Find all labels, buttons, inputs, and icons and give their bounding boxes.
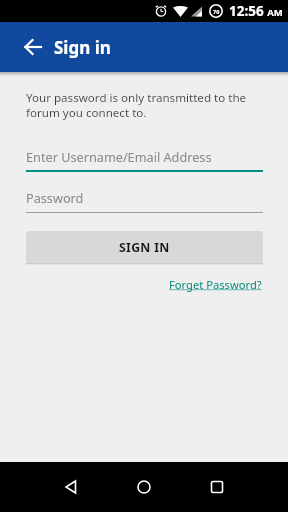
button[interactable] bbox=[0, 22, 52, 72]
staticText: Enter Username/Email Address bbox=[26, 148, 212, 165]
staticText: Your password is only transmitted to the… bbox=[26, 90, 247, 121]
staticText: 70 bbox=[213, 8, 220, 15]
button[interactable] bbox=[119, 462, 169, 512]
staticText: SIGN IN bbox=[119, 239, 170, 256]
button[interactable]: Forget Password? bbox=[169, 277, 262, 292]
button[interactable] bbox=[46, 462, 96, 512]
button[interactable] bbox=[192, 462, 242, 512]
staticText: 12:56 AM bbox=[229, 2, 283, 20]
staticText: Sign in bbox=[54, 36, 111, 59]
staticText: Password bbox=[26, 189, 84, 206]
button[interactable]: SIGN IN bbox=[26, 231, 263, 263]
